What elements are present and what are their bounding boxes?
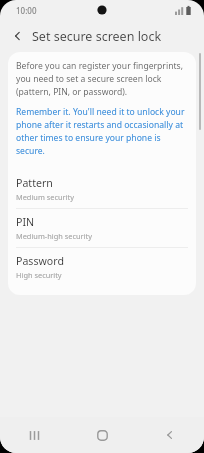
staticText: PIN [16, 215, 35, 229]
staticText: Before you can register your fingerprint… [16, 60, 188, 97]
staticText: 10:00 [16, 5, 37, 16]
button[interactable]: Recent apps [0, 417, 68, 453]
staticText: High security [16, 270, 62, 280]
staticText: Medium-high security [16, 231, 92, 241]
button[interactable]: Pattern [8, 170, 196, 208]
button[interactable]: Password [8, 248, 196, 286]
button[interactable]: PIN [8, 209, 196, 247]
button[interactable]: Navigate up [7, 25, 29, 47]
staticText: Remember it. You'll need it to unlock yo… [16, 106, 188, 156]
staticText: Password [16, 254, 64, 268]
staticText: Set secure screen lock [32, 28, 162, 45]
staticText: Pattern [16, 176, 53, 190]
button[interactable]: Back [136, 417, 204, 453]
button[interactable]: Home [68, 417, 136, 453]
staticText: Medium security [16, 192, 74, 202]
